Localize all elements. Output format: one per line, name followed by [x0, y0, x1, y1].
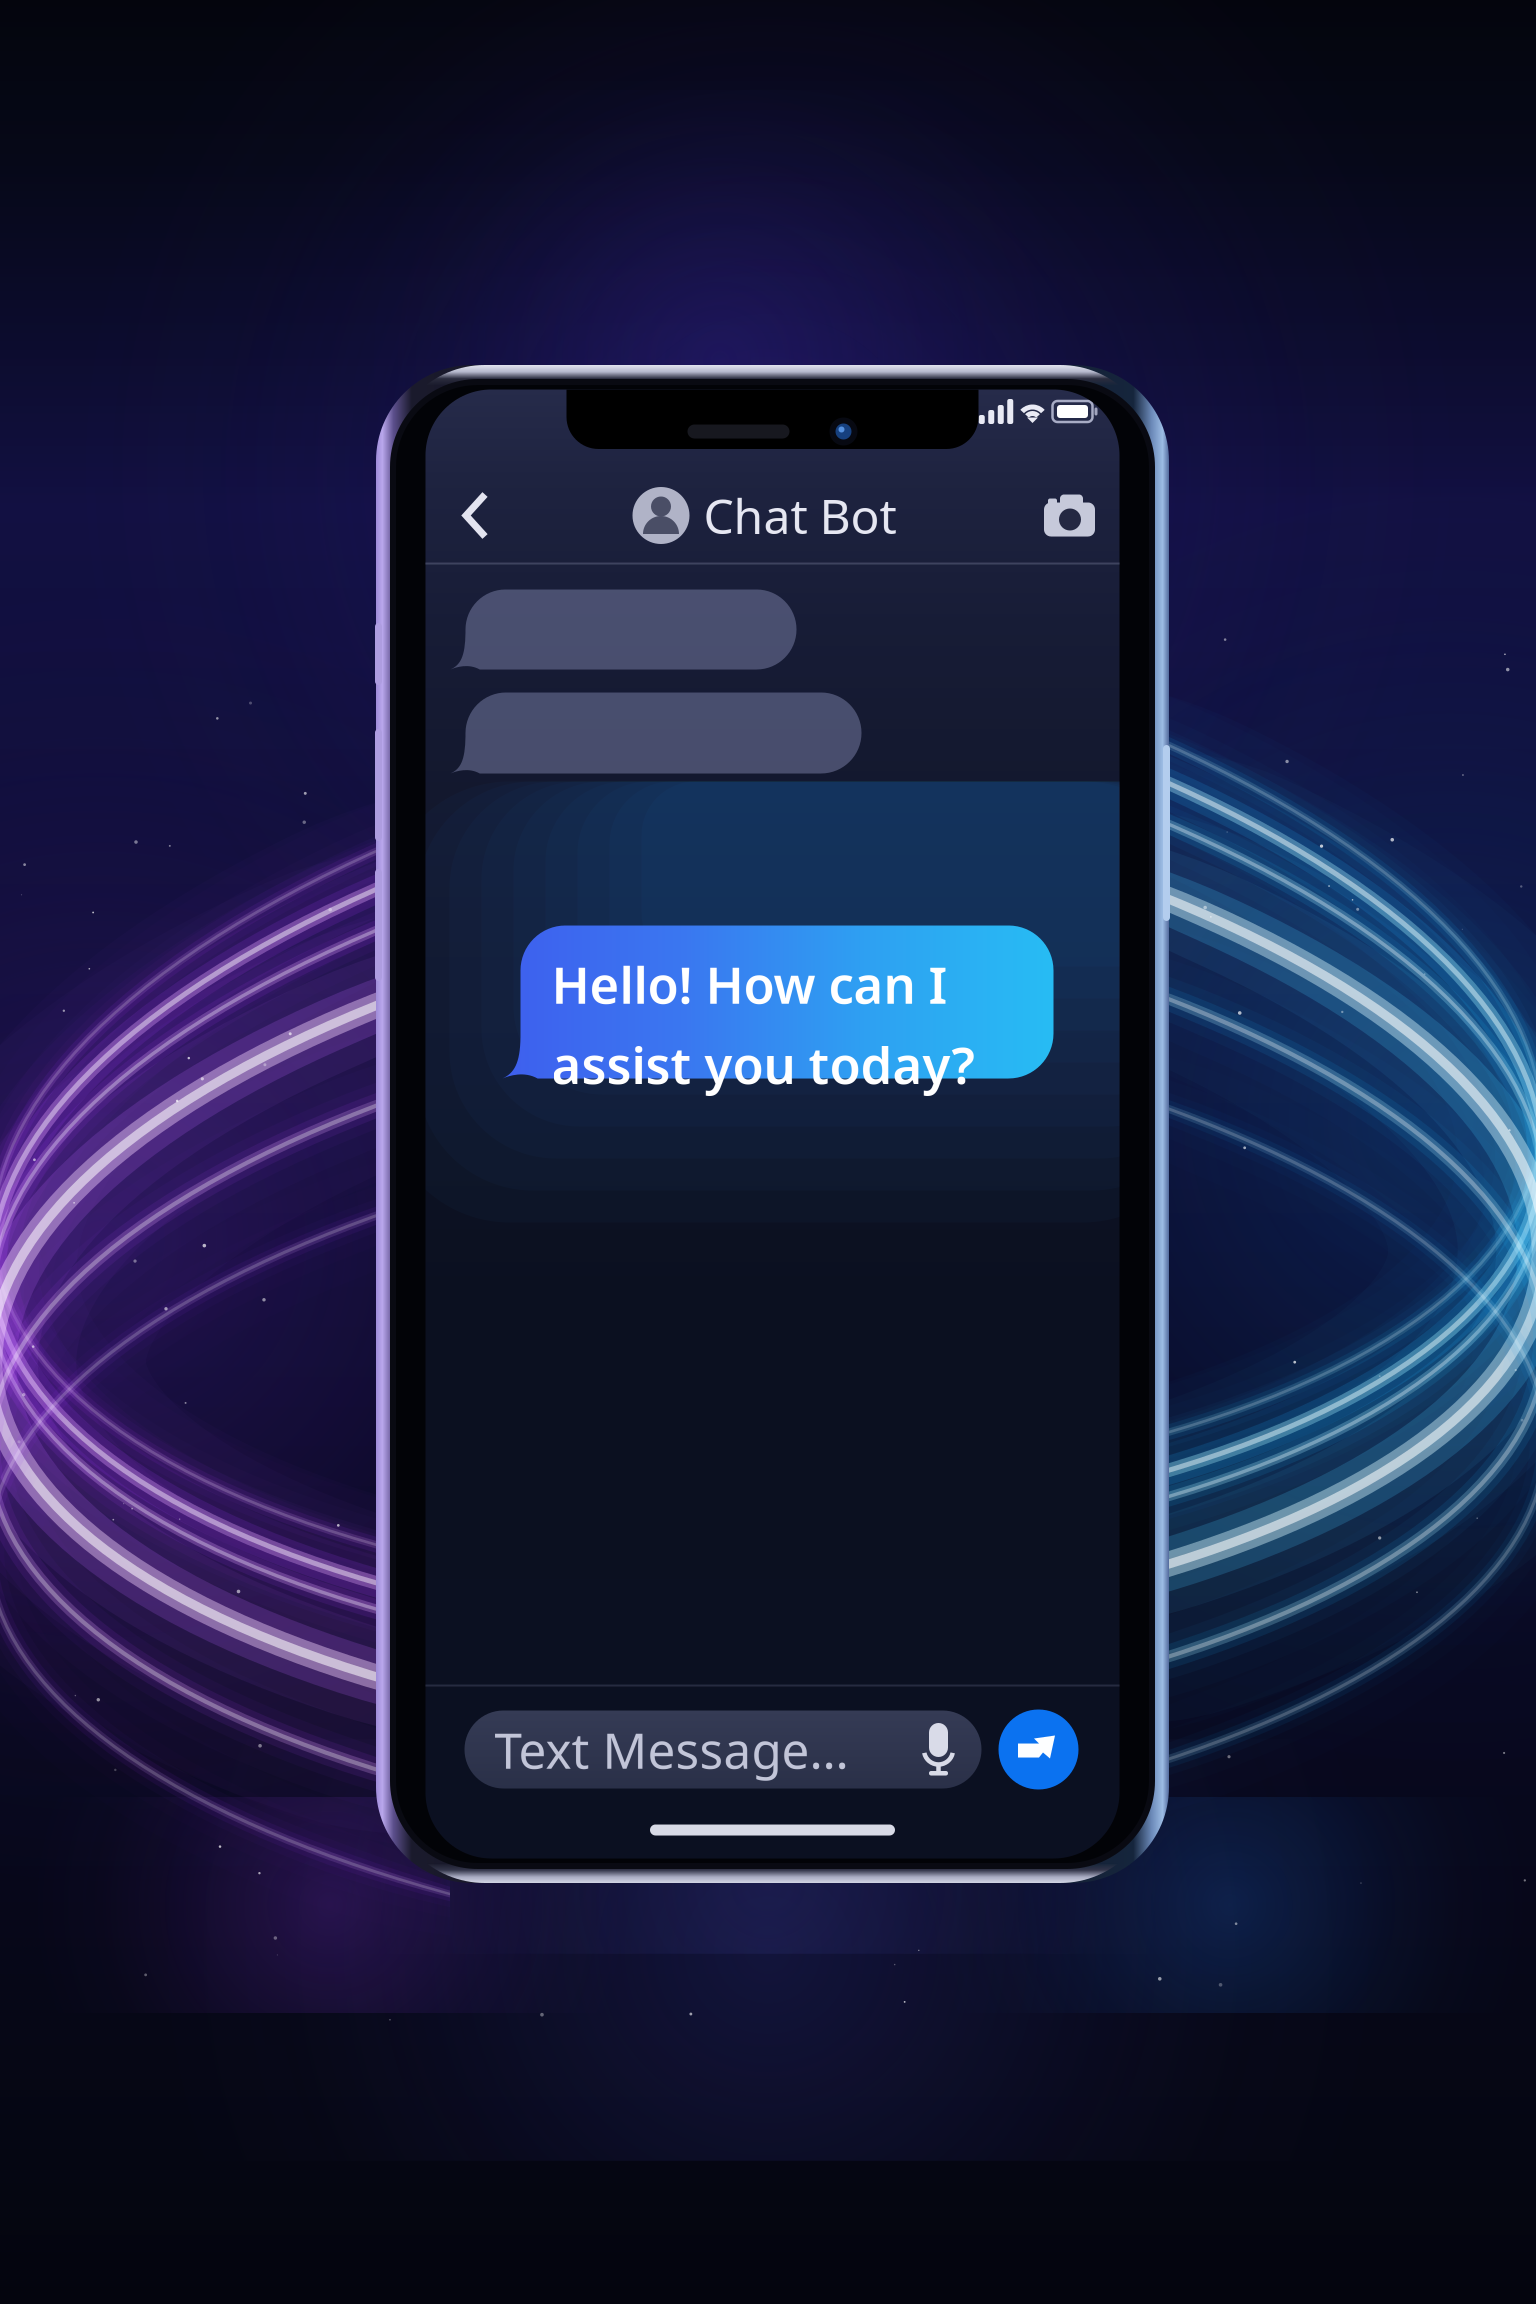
- button[interactable]: Camera: [1027, 472, 1111, 558]
- button[interactable]: Send: [998, 1709, 1078, 1789]
- button[interactable]: Text Message...: [464, 1710, 981, 1788]
- staticText: Text Message...: [494, 1717, 848, 1782]
- staticText: Hello! How can I assist you today?: [551, 950, 974, 1098]
- button[interactable]: Back: [433, 472, 517, 558]
- staticText: Chat Bot: [703, 484, 896, 547]
- button[interactable]: Chat Bot: [624, 472, 904, 559]
